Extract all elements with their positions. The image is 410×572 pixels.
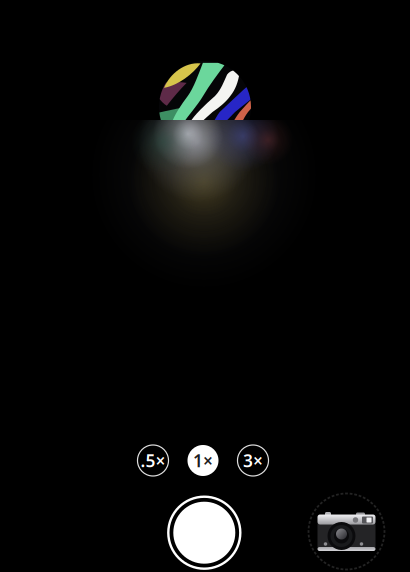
staticText: 1× <box>193 449 213 472</box>
button[interactable]: Take Photo <box>166 495 242 571</box>
staticText: 3× <box>243 449 263 472</box>
staticText: .5× <box>140 449 165 472</box>
button[interactable]: Camera Roll <box>306 491 386 571</box>
button[interactable]: 3× <box>237 445 268 476</box>
button[interactable]: 1× <box>187 445 218 476</box>
button[interactable]: .5× <box>137 445 168 476</box>
